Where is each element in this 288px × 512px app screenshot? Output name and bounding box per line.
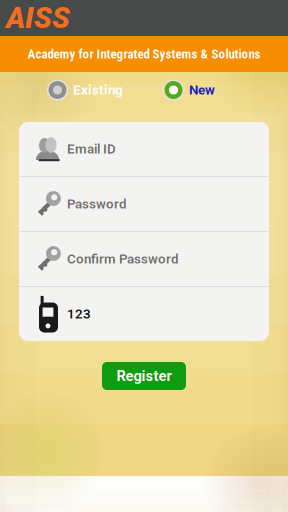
button[interactable]: Confirm Password (19, 232, 269, 286)
staticText: AISS (6, 1, 70, 35)
staticText: 123 (67, 306, 91, 322)
staticText: Register (116, 367, 171, 385)
staticText: Password (67, 196, 127, 212)
button[interactable]: Existing (0, 79, 123, 100)
staticText: Email ID (67, 141, 116, 157)
staticText: Existing (73, 82, 123, 98)
button[interactable]: 123 (19, 287, 269, 341)
button[interactable]: New (163, 79, 288, 100)
button[interactable]: Password (19, 177, 269, 231)
button[interactable]: Email ID (19, 122, 269, 176)
staticText: New (189, 82, 215, 98)
staticText: Academy for Integrated Systems & Solutio… (27, 46, 260, 62)
button[interactable]: Register (102, 362, 186, 390)
staticText: Confirm Password (67, 251, 179, 267)
